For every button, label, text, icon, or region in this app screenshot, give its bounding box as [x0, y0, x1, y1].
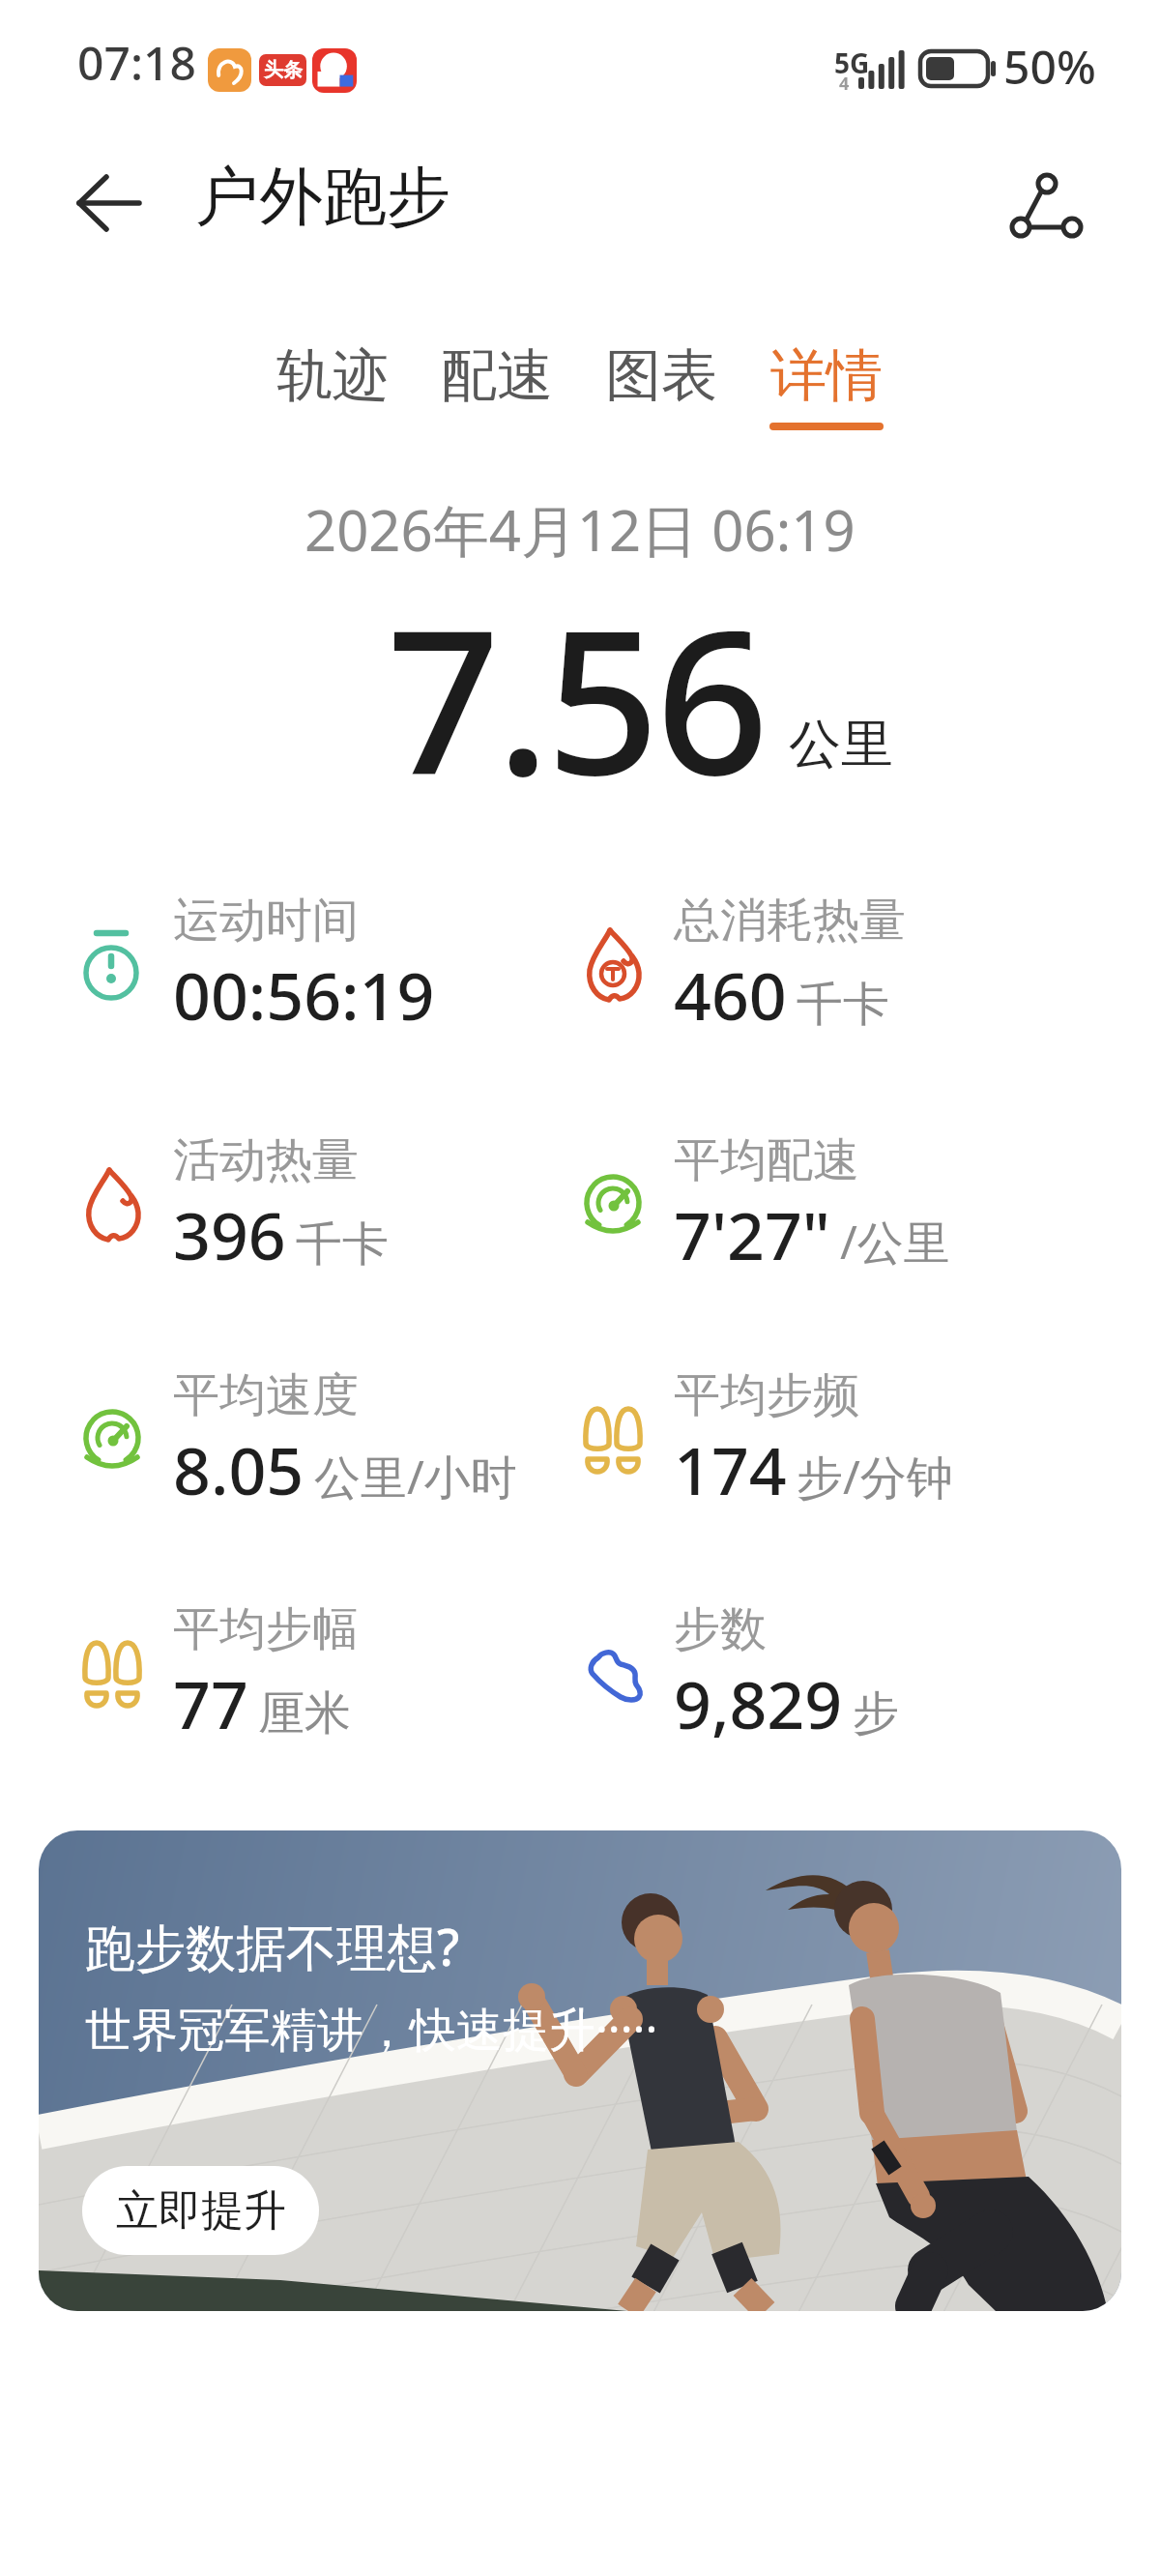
staticText: 2026年4月12日 06:19	[304, 491, 855, 568]
staticText: 运动时间	[173, 892, 359, 950]
button[interactable]: 轨迹	[276, 340, 389, 423]
staticText: 步	[853, 1684, 899, 1742]
staticText: 千卡	[296, 1215, 389, 1273]
button[interactable]: 立即提升	[82, 2166, 319, 2255]
staticText: 396	[173, 1189, 286, 1279]
staticText: 活动热量	[173, 1131, 359, 1189]
button[interactable]	[64, 168, 160, 238]
staticText: 世界冠军精讲，快速提升·····	[85, 1997, 658, 2061]
staticText: 77	[173, 1658, 248, 1748]
staticText: 户外跑步	[195, 157, 450, 237]
button[interactable]: 详情	[769, 340, 884, 430]
staticText: 立即提升	[116, 2184, 286, 2238]
staticText: 平均速度	[173, 1366, 359, 1424]
staticText: 配速	[441, 340, 553, 411]
button[interactable]: 配速	[441, 340, 553, 423]
staticText: 174	[674, 1424, 787, 1514]
staticText: 8.05	[173, 1424, 304, 1514]
staticText: 7'27"	[674, 1189, 830, 1279]
staticText: 公里	[789, 712, 893, 777]
staticText: 总消耗热量	[674, 892, 906, 950]
staticText: 厘米	[258, 1684, 351, 1742]
staticText: 07:18	[77, 31, 196, 94]
staticText: 步数	[674, 1600, 767, 1658]
staticText: 跑步数据不理想?	[85, 1912, 460, 1980]
staticText: 公里/小时	[314, 1445, 517, 1508]
staticText: 平均步频	[674, 1366, 859, 1424]
staticText: 平均步幅	[173, 1600, 359, 1658]
staticText: 00:56:19	[173, 950, 435, 1039]
staticText: 5G	[834, 44, 870, 81]
staticText: 9,829	[674, 1658, 843, 1748]
staticText: 平均配速	[674, 1131, 859, 1189]
staticText: 7.56	[387, 563, 766, 833]
staticText: 千卡	[797, 976, 889, 1034]
staticText: 4	[839, 72, 850, 96]
staticText: 详情	[770, 340, 883, 411]
staticText: /公里	[840, 1210, 950, 1273]
staticText: 460	[674, 950, 787, 1039]
staticText: 轨迹	[276, 340, 389, 411]
staticText: 步/分钟	[797, 1445, 953, 1508]
staticText: 头条	[264, 58, 303, 82]
button[interactable]: 图表	[605, 340, 717, 423]
button[interactable]: 跑步数据不理想?	[39, 1830, 1121, 2311]
staticText: 50%	[1003, 35, 1096, 98]
staticText: 图表	[605, 340, 717, 411]
button[interactable]	[986, 161, 1075, 249]
